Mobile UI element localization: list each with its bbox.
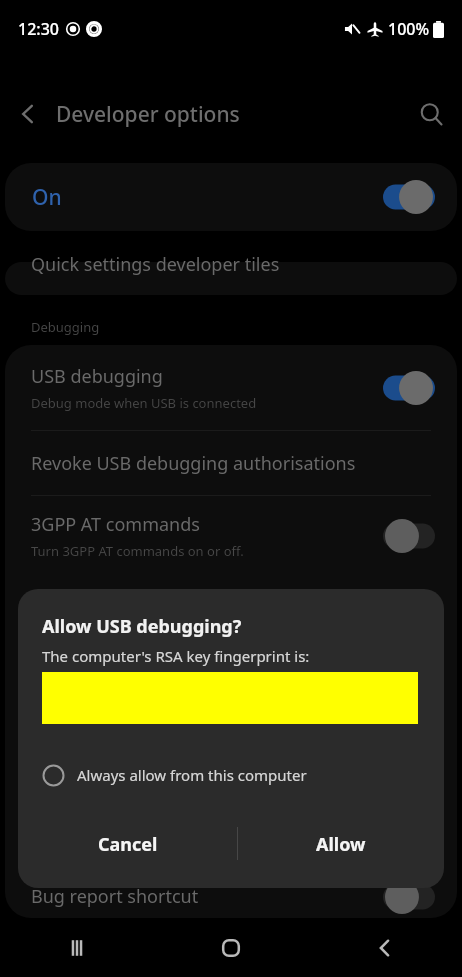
staticText: On (32, 183, 62, 212)
button[interactable]: Home (154, 918, 308, 977)
button[interactable]: USB debugging (5, 345, 457, 430)
button[interactable]: Navigate up (0, 88, 56, 140)
button[interactable]: Cancel (18, 813, 237, 875)
staticText: Cancel (98, 832, 158, 857)
staticText: 12:30 (18, 18, 59, 40)
button[interactable]: Switch off (383, 881, 435, 913)
button[interactable]: Search (400, 88, 462, 140)
button[interactable]: Always allow from this computer (18, 753, 444, 797)
button[interactable]: Bug report shortcut (5, 875, 457, 918)
staticText: Bug report shortcut (31, 884, 199, 909)
staticText: Turn 3GPP AT commands on or off. (31, 542, 244, 560)
button[interactable]: Revoke USB debugging authorisations (5, 431, 457, 495)
staticText: USB debugging (31, 364, 163, 389)
button[interactable]: Back (308, 918, 462, 977)
staticText: Always allow from this computer (77, 765, 307, 785)
staticText: The computer's RSA key fingerprint is: (42, 646, 310, 666)
staticText: Allow USB debugging? (42, 614, 242, 639)
button[interactable]: 3GPP AT commands (5, 496, 457, 576)
staticText: 3GPP AT commands (31, 512, 200, 537)
button[interactable]: Recent apps (0, 918, 154, 977)
button[interactable]: Switch on (383, 181, 435, 213)
staticText: 100% (388, 18, 430, 40)
button[interactable]: Switch on (383, 372, 435, 404)
staticText: Allow (316, 832, 366, 857)
staticText: Revoke USB debugging authorisations (31, 451, 356, 476)
staticText: Developer options (56, 100, 240, 129)
button[interactable]: Allow (237, 813, 444, 875)
button[interactable]: On (5, 163, 457, 231)
button[interactable]: Switch off (383, 520, 435, 552)
staticText: Debug mode when USB is connected (31, 394, 257, 412)
staticText: Debugging (31, 318, 100, 336)
staticText: Quick settings developer tiles (31, 252, 280, 277)
button[interactable] (5, 262, 457, 295)
